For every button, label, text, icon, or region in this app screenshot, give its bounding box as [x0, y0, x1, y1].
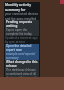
- staticText: Tap to open the complete list today: [6, 28, 38, 36]
- staticText: Updated a moment ago by sync service: [5, 36, 39, 44]
- button[interactable]: Pending requests waiting: [5, 20, 39, 36]
- staticText: Open the detailed report now: [6, 44, 38, 52]
- button[interactable]: What changed in this release: [5, 60, 39, 77]
- staticText: Monthly activity summary for: [5, 3, 39, 12]
- staticText: The dashboard shows a combined view of a…: [6, 68, 38, 77]
- staticText: What changed in this release: [6, 60, 38, 68]
- staticText: example.com/reports/summary: [6, 52, 38, 60]
- staticText: your connected devices and the apps inst…: [5, 12, 39, 20]
- staticText: Pending requests waiting: [6, 20, 38, 28]
- button[interactable]: Open the detailed report now: [5, 44, 39, 60]
